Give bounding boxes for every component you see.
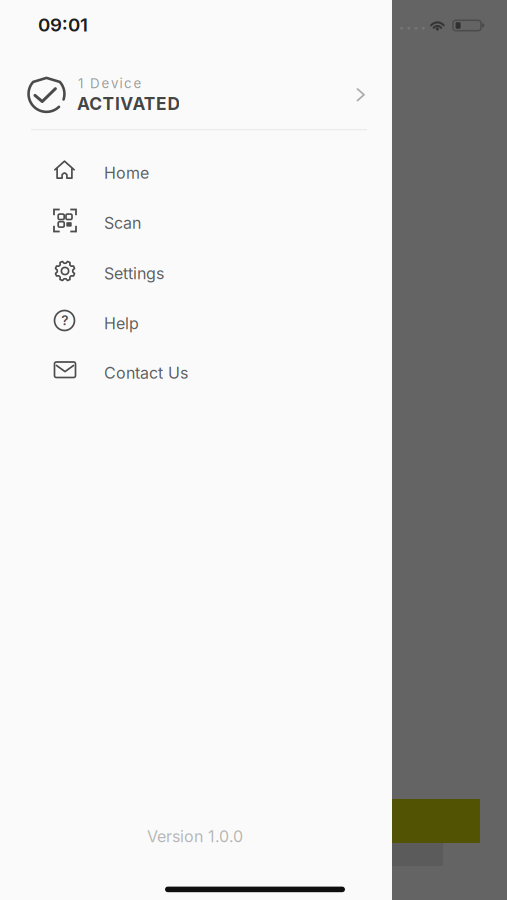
staticText: Contact Us xyxy=(104,363,188,382)
staticText: Settings xyxy=(104,264,164,283)
staticText: Scan xyxy=(104,213,141,232)
staticText: ACTIVATED xyxy=(77,93,180,114)
button[interactable]: ? xyxy=(0,295,392,345)
button[interactable]: Scan xyxy=(0,195,392,245)
staticText: Help xyxy=(104,314,139,333)
staticText: 1 Device xyxy=(78,76,141,91)
staticText: ? xyxy=(61,313,68,328)
staticText: Version 1.0.0 xyxy=(147,827,243,846)
staticText: Home xyxy=(104,163,149,182)
staticText: 09:01 xyxy=(38,14,88,36)
button[interactable]: 1 Device xyxy=(0,62,392,128)
button[interactable]: Settings xyxy=(0,245,392,295)
button[interactable]: Contact Us xyxy=(0,345,392,395)
button[interactable]: Home xyxy=(0,145,392,195)
